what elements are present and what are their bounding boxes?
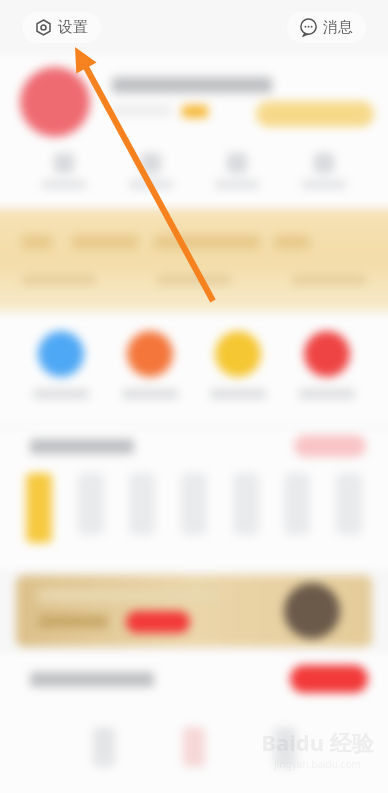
button[interactable] [233, 473, 259, 535]
staticText: 设置 [58, 18, 88, 37]
button[interactable] [183, 727, 205, 767]
button[interactable] [33, 331, 89, 399]
button[interactable] [336, 473, 362, 535]
button[interactable]: 设置 [22, 12, 101, 43]
button[interactable] [181, 473, 207, 535]
button[interactable] [256, 101, 374, 127]
button[interactable] [215, 153, 259, 189]
button[interactable] [210, 331, 266, 399]
staticText: jingyan.baidu.com [274, 757, 361, 771]
button[interactable] [302, 153, 346, 189]
button[interactable] [20, 67, 90, 137]
button[interactable] [16, 575, 372, 647]
button[interactable] [93, 727, 115, 767]
button[interactable] [290, 665, 368, 693]
button[interactable] [129, 153, 173, 189]
button[interactable] [299, 331, 355, 399]
staticText: Baidu 经验 [261, 727, 374, 757]
button[interactable] [294, 435, 366, 457]
button[interactable] [274, 727, 296, 767]
button[interactable] [284, 473, 310, 535]
button[interactable] [122, 331, 178, 399]
button[interactable]: 消息 [287, 12, 366, 43]
button[interactable] [126, 611, 190, 633]
button[interactable] [0, 209, 388, 311]
button[interactable] [42, 153, 86, 189]
button[interactable] [129, 473, 155, 535]
button[interactable] [78, 473, 104, 535]
button[interactable] [26, 473, 52, 543]
staticText: 消息 [323, 18, 353, 37]
